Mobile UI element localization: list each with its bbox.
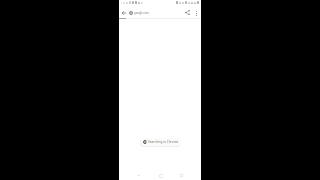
staticText: Searching in Chrome (148, 140, 179, 144)
button[interactable]: Recents (176, 170, 187, 180)
button[interactable]: Back (133, 170, 144, 180)
button[interactable]: Searching in Chrome (141, 138, 181, 146)
staticText: google.com (134, 11, 149, 15)
button[interactable]: Home (155, 170, 166, 180)
button[interactable]: Back (119, 8, 128, 17)
button[interactable]: Share (183, 8, 192, 17)
button[interactable]: More options (192, 9, 200, 17)
button[interactable]: google.com (129, 8, 149, 17)
